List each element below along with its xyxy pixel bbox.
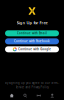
staticText: Continue with Facebook <box>14 39 50 43</box>
button[interactable]: Profile <box>45 92 59 99</box>
button[interactable]: Search <box>18 92 32 99</box>
button[interactable]: Continue with Google <box>5 46 59 52</box>
button[interactable]: Workouts <box>32 92 45 99</box>
button[interactable]: Continue with Email <box>5 30 59 36</box>
button[interactable]: Home <box>5 92 18 99</box>
button[interactable]: Continue with Facebook <box>5 38 59 44</box>
staticText: Continue with Email <box>17 31 47 35</box>
staticText: Sign Up for Free <box>16 20 47 25</box>
staticText: Continue with Google <box>18 47 51 51</box>
staticText: By signing up you agree to our Terms of <box>5 81 59 85</box>
staticText: Service and Privacy Policy <box>15 85 48 89</box>
